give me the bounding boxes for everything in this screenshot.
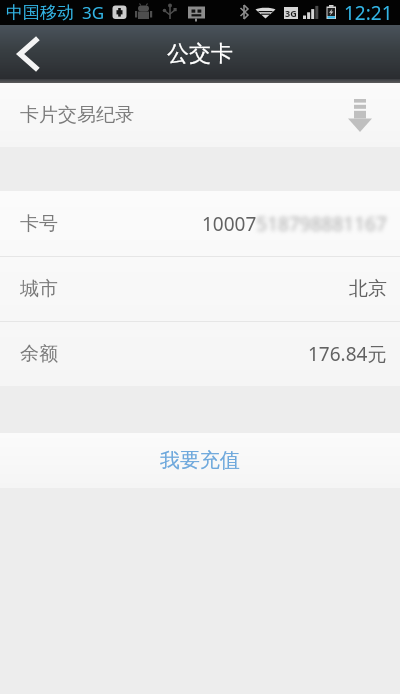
staticText: 卡号 xyxy=(20,212,58,236)
staticText: 10007518798881167 xyxy=(202,211,387,237)
button[interactable]: 余额 xyxy=(0,322,400,386)
button[interactable]: Back xyxy=(0,25,58,83)
staticText: 中国移动 xyxy=(6,2,74,23)
staticText: 公交卡 xyxy=(167,40,233,68)
staticText: 10007518798881167 xyxy=(202,211,387,237)
button[interactable]: 城市 xyxy=(0,257,400,321)
staticText: 176.84元 xyxy=(308,341,387,367)
button[interactable]: 我要充值 xyxy=(0,433,400,488)
staticText: 北京 xyxy=(349,277,387,301)
staticText: 3G xyxy=(285,7,297,19)
staticText: 城市 xyxy=(20,277,58,301)
button[interactable]: 卡片交易纪录 xyxy=(0,83,400,147)
staticText: 我要充值 xyxy=(160,448,240,473)
staticText: 卡片交易纪录 xyxy=(20,103,134,127)
staticText: 3G xyxy=(82,1,105,24)
staticText: 余额 xyxy=(20,342,58,366)
button[interactable]: 卡号 xyxy=(0,191,400,256)
staticText: 12:21 xyxy=(344,0,393,25)
